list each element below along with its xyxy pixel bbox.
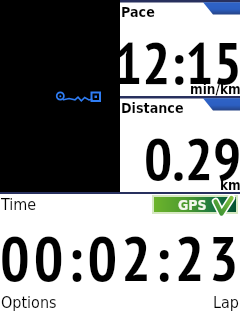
button[interactable]: GPS signal acquired bbox=[152, 195, 238, 214]
staticText: Distance bbox=[121, 100, 184, 117]
staticText: Pace bbox=[121, 4, 155, 21]
staticText: 00:02:23 bbox=[0, 218, 240, 288]
button[interactable]: Lap bbox=[165, 290, 240, 314]
staticText: km bbox=[220, 177, 240, 193]
staticText: min/km bbox=[190, 81, 240, 97]
button[interactable]: Options bbox=[0, 290, 80, 314]
staticText: 0.29 bbox=[144, 120, 240, 196]
staticText: Options bbox=[1, 293, 57, 312]
staticText: 12:15 bbox=[114, 24, 240, 100]
staticText: GPS bbox=[178, 197, 207, 213]
staticText: Lap bbox=[213, 293, 239, 312]
staticText: Time bbox=[1, 195, 37, 214]
